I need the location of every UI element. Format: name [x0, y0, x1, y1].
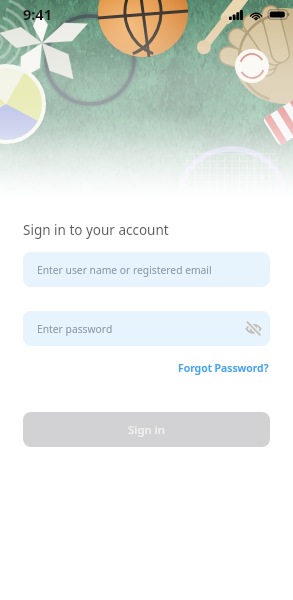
staticText: Sign in to your account — [23, 221, 169, 239]
staticText: 9:41 — [23, 4, 52, 24]
staticText: Enter password — [37, 322, 113, 336]
button[interactable]: Sign in — [23, 412, 270, 447]
button[interactable]: Show password — [245, 320, 262, 337]
button[interactable]: Enter password — [23, 311, 270, 346]
staticText: Enter user name or registered email — [37, 263, 212, 277]
button[interactable]: Forgot Password? — [178, 361, 269, 375]
staticText: Sign in — [128, 422, 166, 438]
button[interactable]: Enter user name or registered email — [23, 252, 270, 287]
